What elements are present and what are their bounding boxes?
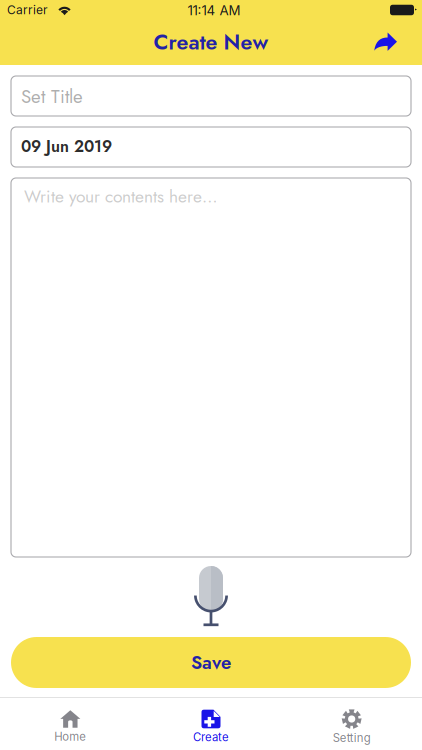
staticText: Save [191,649,231,676]
staticText: Carrier [7,3,48,17]
staticText: Write your contents here… [24,184,218,209]
staticText: Home [54,730,86,743]
button[interactable]: Record audio [194,557,228,637]
staticText: Create New [153,27,268,57]
button[interactable]: Share [356,22,422,61]
button[interactable]: Save [11,637,411,688]
staticText: Create [193,730,229,744]
staticText: Set Title [21,83,83,110]
staticText: 11:14 AM [187,2,240,18]
staticText: Setting [333,731,371,745]
button[interactable]: Setting [281,698,422,745]
button[interactable]: Create [141,699,281,744]
staticText: 09 Jun 2019 [21,135,112,158]
button[interactable]: Home [0,699,141,743]
